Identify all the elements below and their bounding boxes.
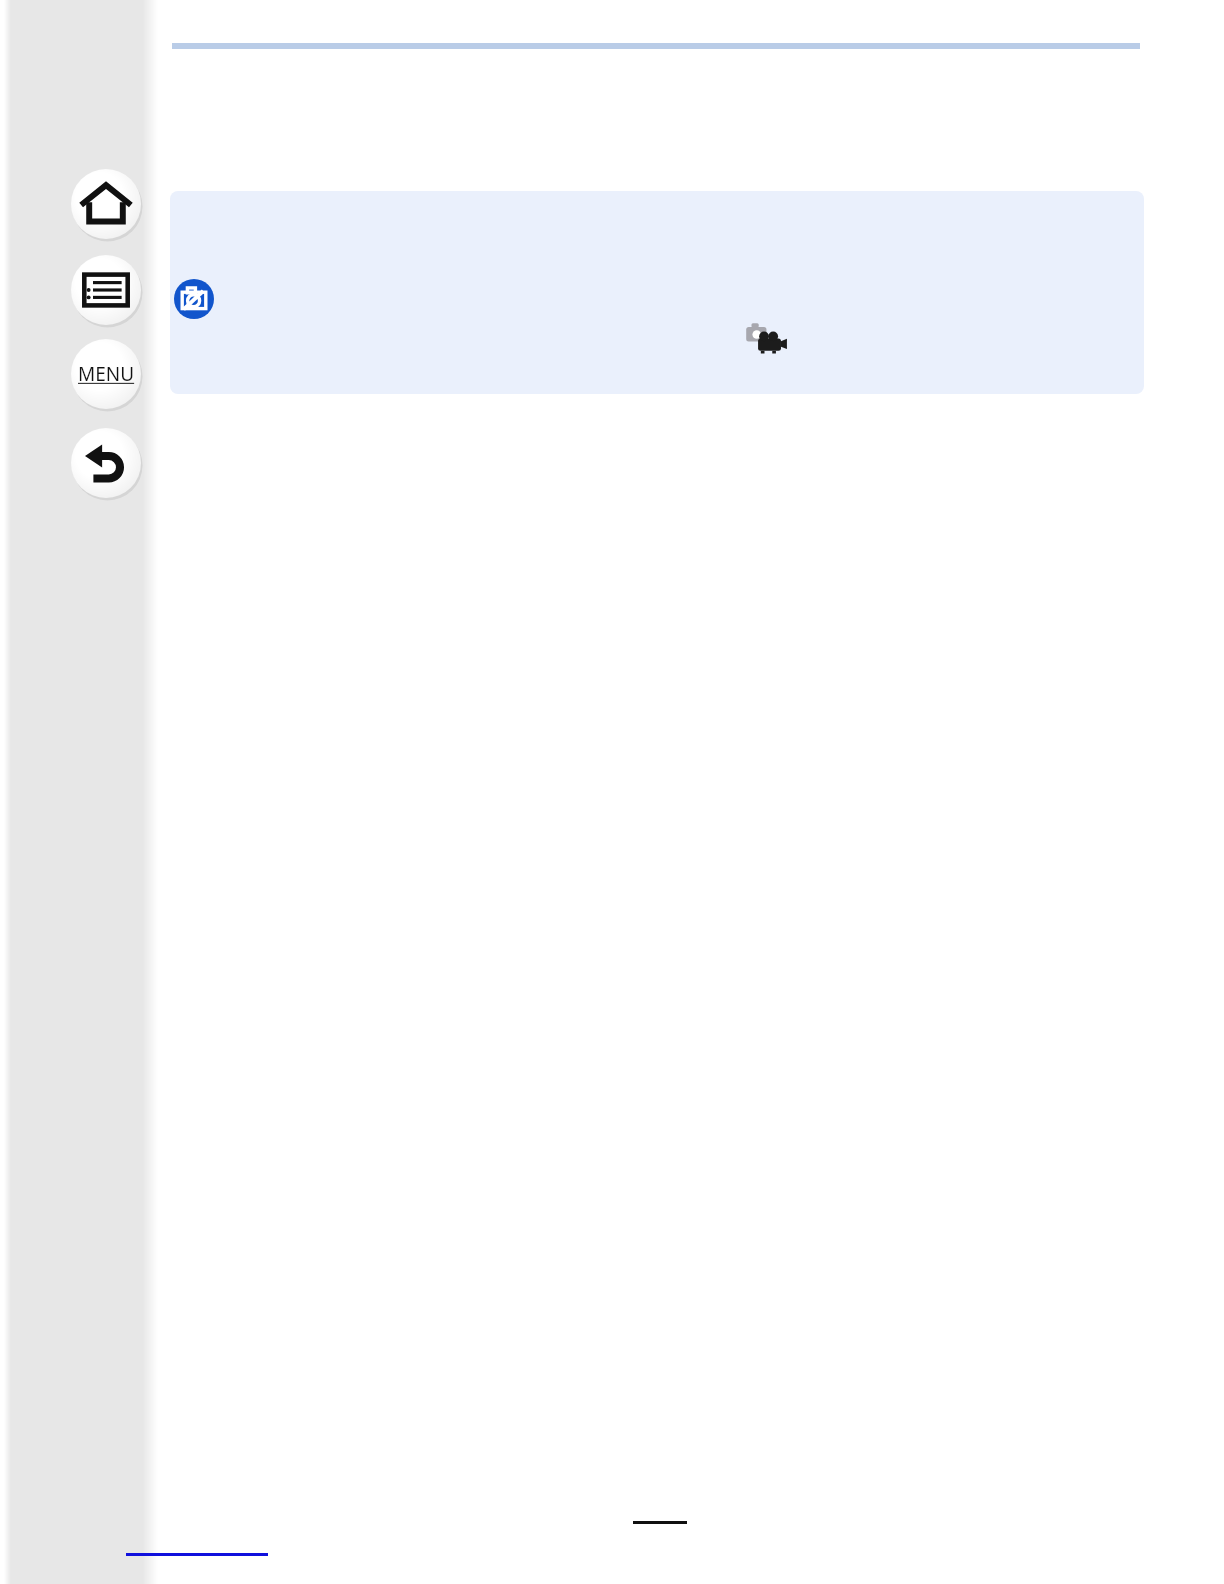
- staticText: MENU: [78, 361, 135, 387]
- button[interactable]: Home: [71, 169, 141, 239]
- button[interactable]: Recording not available: [174, 279, 214, 319]
- button[interactable]: Back: [71, 428, 141, 498]
- button[interactable]: List: [71, 255, 141, 325]
- button[interactable]: [170, 191, 1144, 394]
- button[interactable]: Menu: [71, 339, 141, 409]
